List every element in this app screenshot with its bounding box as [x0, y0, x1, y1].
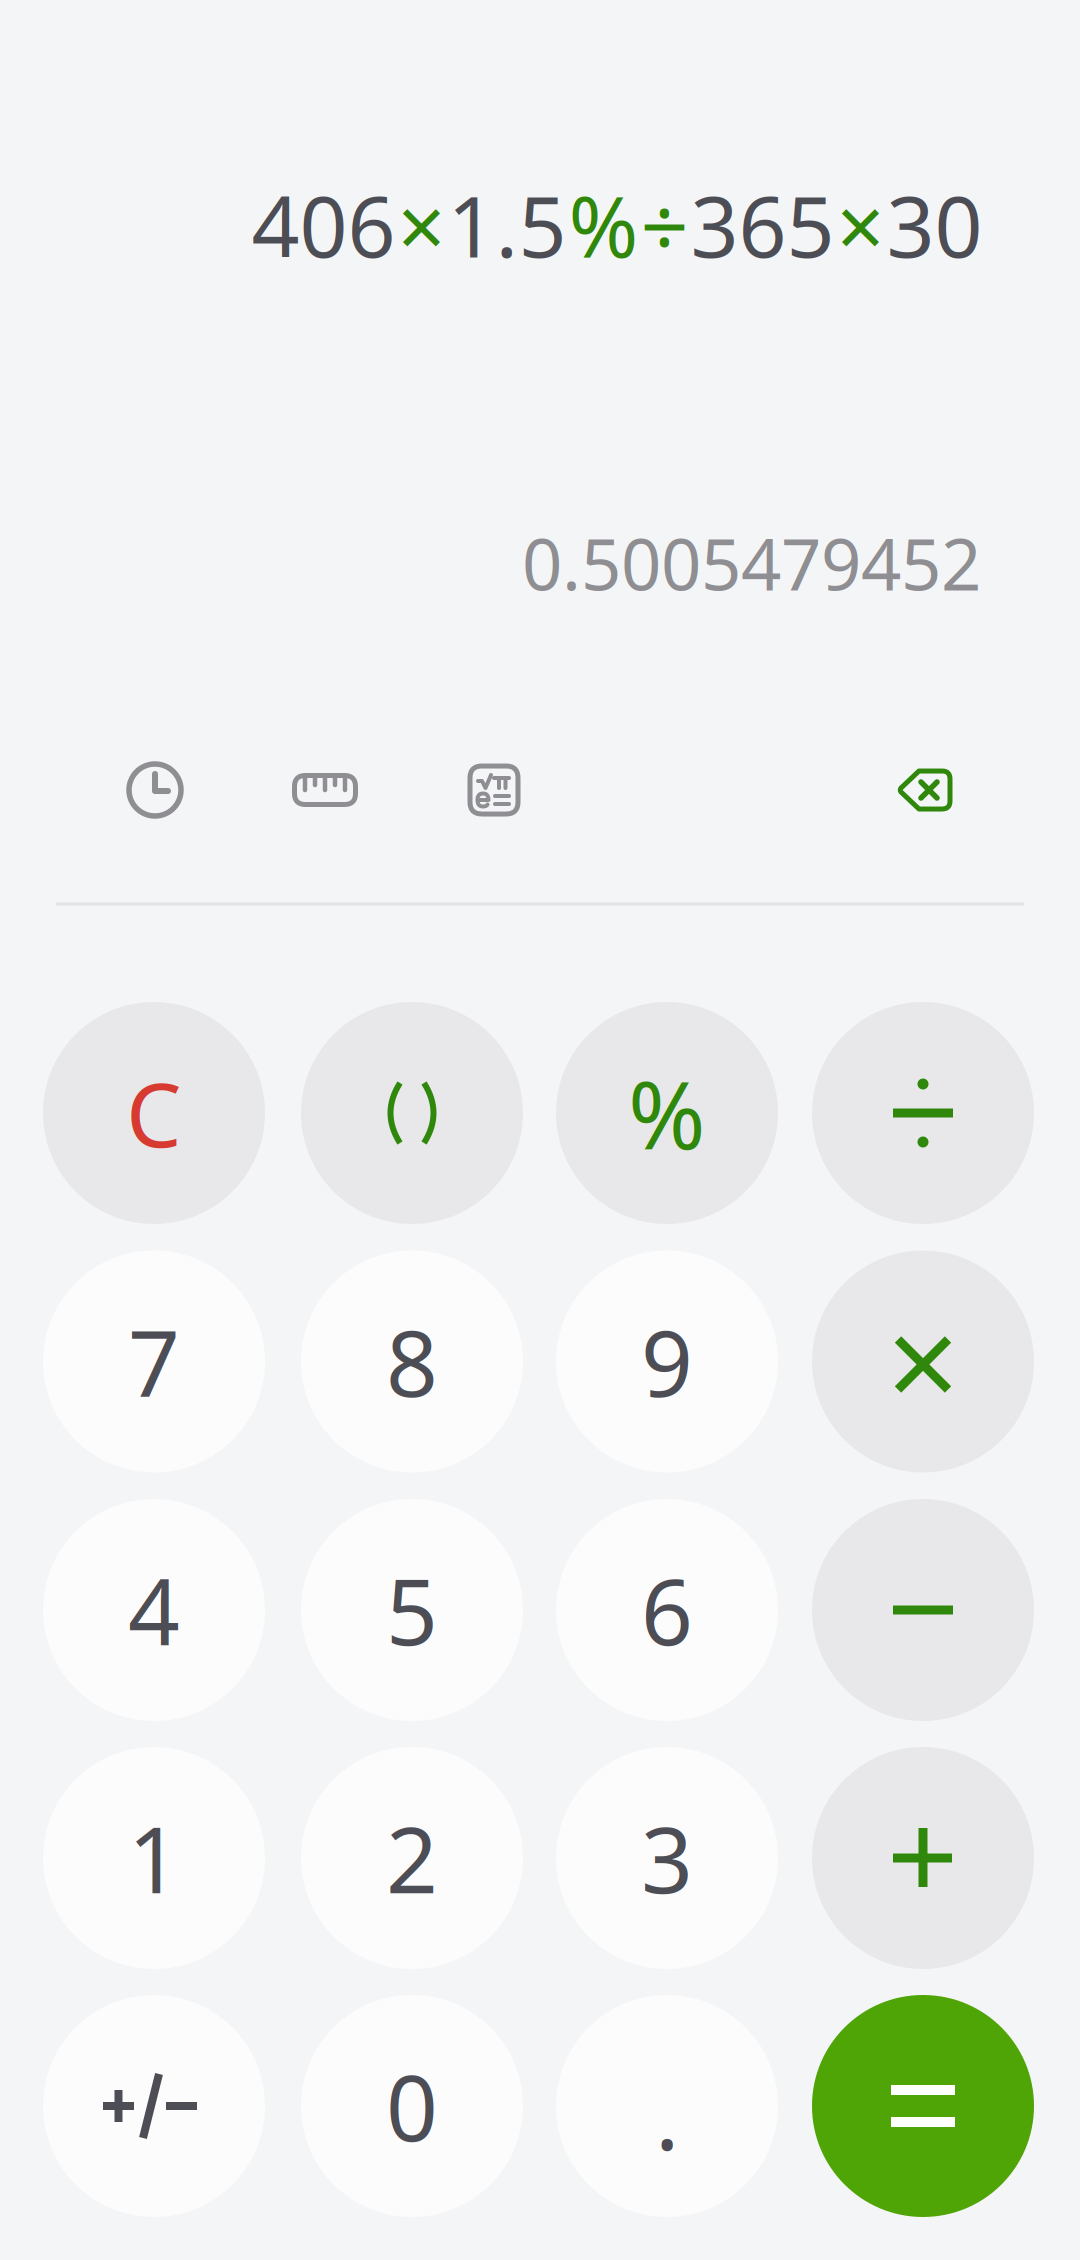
- staticText: ×: [397, 169, 445, 281]
- button[interactable]: Scientific calculator: [428, 724, 560, 856]
- button[interactable]: 7: [43, 1250, 265, 1472]
- button[interactable]: History: [89, 724, 221, 856]
- staticText: 9: [641, 1301, 693, 1422]
- staticText: 5: [386, 1550, 438, 1670]
- staticText: 4: [128, 1550, 180, 1670]
- staticText: 0.5005479452: [522, 516, 981, 610]
- staticText: %: [628, 1051, 706, 1175]
- staticText: 3: [641, 1798, 693, 1918]
- button[interactable]: 4: [43, 1499, 265, 1721]
- button[interactable]: Parentheses: [301, 1002, 523, 1224]
- button[interactable]: Plus or minus: [43, 1995, 265, 2217]
- button[interactable]: 9: [556, 1250, 778, 1472]
- staticText: 0: [386, 2046, 438, 2166]
- button[interactable]: 1: [43, 1747, 265, 1969]
- staticText: .: [655, 2055, 679, 2175]
- button[interactable]: Divide: [812, 1002, 1034, 1224]
- staticText: 365: [690, 169, 834, 281]
- staticText: 2: [386, 1798, 438, 1918]
- button[interactable]: .: [556, 1995, 778, 2217]
- button[interactable]: 5: [301, 1499, 523, 1721]
- staticText: 406: [251, 169, 395, 281]
- staticText: C: [126, 1055, 182, 1171]
- button[interactable]: Minus: [812, 1499, 1034, 1721]
- staticText: 1.5: [447, 169, 566, 281]
- staticText: 1: [128, 1798, 180, 1918]
- button[interactable]: Plus: [812, 1747, 1034, 1969]
- button[interactable]: 8: [301, 1250, 523, 1472]
- button[interactable]: 6: [556, 1499, 778, 1721]
- button[interactable]: Multiply: [812, 1250, 1034, 1472]
- button[interactable]: %: [556, 1002, 778, 1224]
- button[interactable]: 2: [301, 1747, 523, 1969]
- staticText: ÷: [640, 169, 688, 281]
- button[interactable]: 3: [556, 1747, 778, 1969]
- staticText: 8: [386, 1301, 438, 1422]
- staticText: 30: [886, 169, 982, 281]
- staticText: 6: [641, 1550, 693, 1670]
- staticText: ×: [836, 169, 884, 281]
- button[interactable]: 0: [301, 1995, 523, 2217]
- button[interactable]: C: [43, 1002, 265, 1224]
- staticText: %: [568, 169, 638, 281]
- staticText: 7: [128, 1301, 180, 1422]
- button[interactable]: Backspace: [859, 724, 991, 856]
- button[interactable]: Unit converter: [259, 724, 391, 856]
- button[interactable]: Equals: [812, 1995, 1034, 2217]
